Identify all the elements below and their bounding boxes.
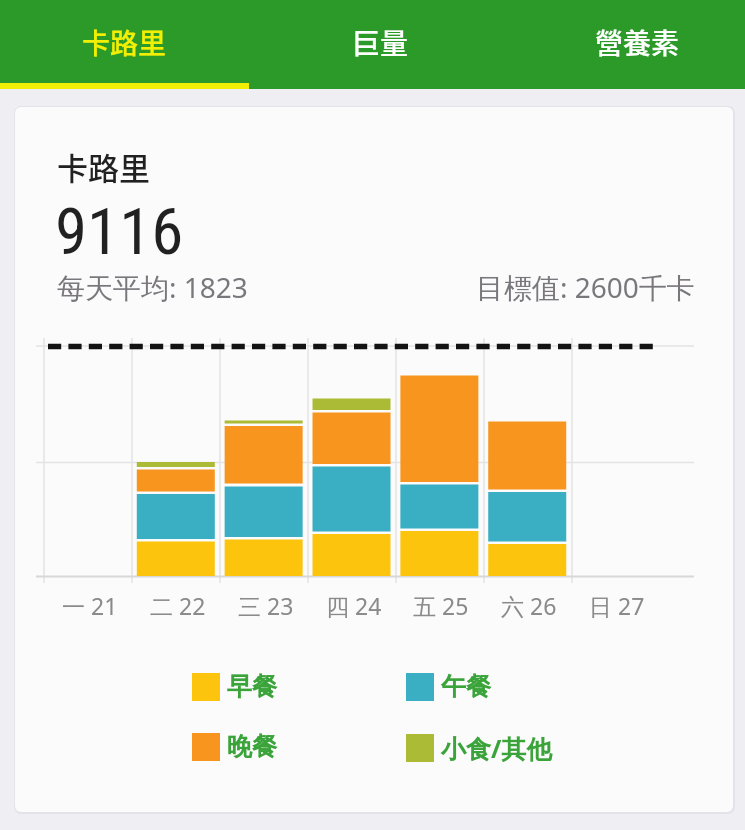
staticText: 目標值: 2600千卡: [476, 268, 695, 306]
staticText: 一 21: [62, 590, 118, 621]
staticText: 巨量: [352, 22, 409, 63]
staticText: 午餐: [441, 671, 491, 702]
staticText: 晚餐: [227, 731, 277, 762]
staticText: 小食/其他: [441, 731, 552, 765]
button[interactable]: 巨量: [249, 0, 497, 89]
staticText: 三 23: [238, 590, 294, 621]
staticText: 四 24: [326, 590, 382, 621]
staticText: 卡路里: [57, 144, 150, 189]
staticText: 二 22: [150, 590, 206, 621]
button[interactable]: 卡路里: [0, 0, 249, 89]
staticText: 營養素: [595, 22, 680, 63]
staticText: 五 25: [413, 590, 469, 621]
button[interactable]: 營養素: [497, 0, 745, 89]
staticText: 每天平均: 1823: [57, 268, 248, 306]
staticText: 9116: [55, 194, 184, 270]
staticText: 六 26: [501, 590, 557, 621]
staticText: 早餐: [227, 671, 277, 702]
staticText: 日 27: [589, 590, 645, 621]
staticText: 卡路里: [82, 22, 167, 63]
